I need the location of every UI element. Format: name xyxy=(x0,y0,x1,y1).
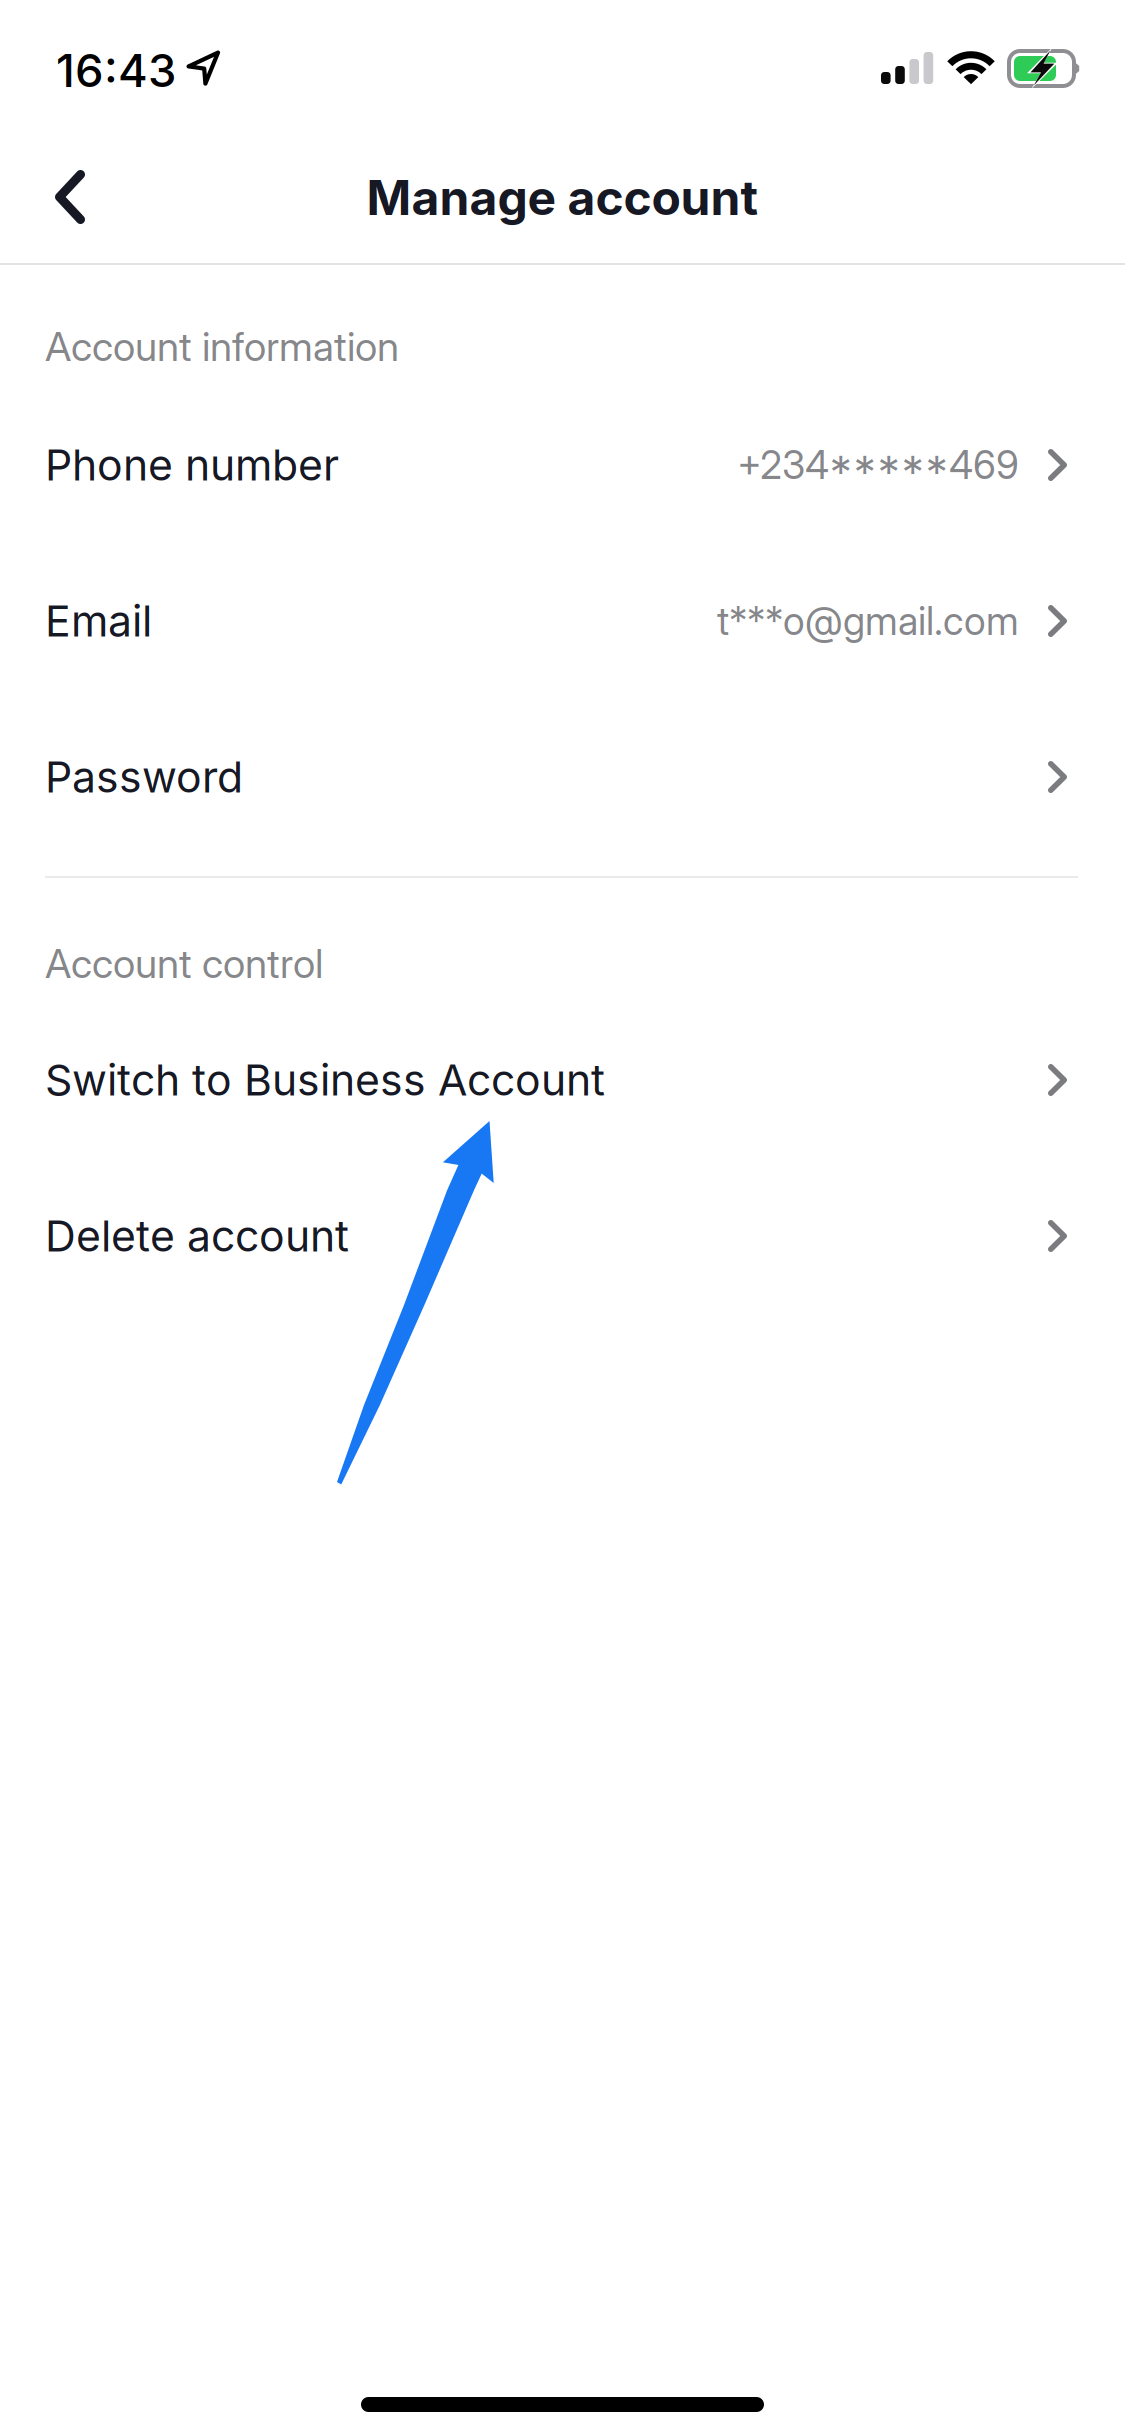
button[interactable]: Delete account xyxy=(0,1158,1125,1314)
staticText: Password xyxy=(45,751,243,803)
staticText: Email xyxy=(45,595,152,647)
staticText: Delete account xyxy=(45,1210,349,1262)
button[interactable]: Phone number xyxy=(0,387,1125,543)
staticText: t***o@gmail.com xyxy=(717,598,1019,644)
staticText: 16:43 xyxy=(56,43,176,98)
button[interactable]: Email xyxy=(0,543,1125,699)
button[interactable]: Switch to Business Account xyxy=(0,1002,1125,1158)
staticText: Account control xyxy=(45,939,323,988)
staticText: Manage account xyxy=(366,168,758,227)
staticText: Account information xyxy=(45,322,399,371)
button[interactable]: Back xyxy=(0,132,121,262)
staticText: Phone number xyxy=(45,439,339,491)
staticText: Switch to Business Account xyxy=(45,1054,605,1106)
staticText: +234*****469 xyxy=(737,442,1019,488)
button[interactable]: Password xyxy=(0,699,1125,855)
